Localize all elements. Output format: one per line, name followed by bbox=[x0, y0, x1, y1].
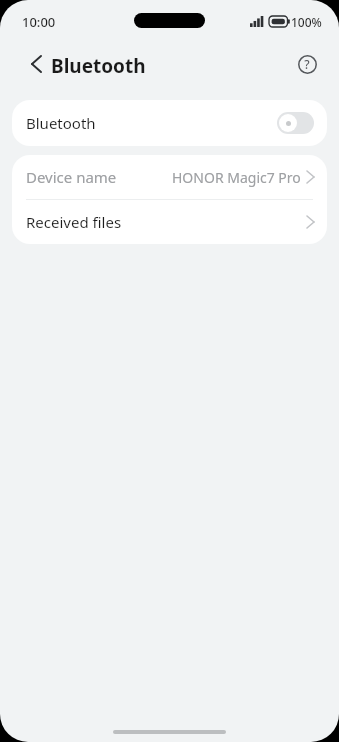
button[interactable]: Back bbox=[20, 48, 52, 80]
button[interactable]: Device name bbox=[12, 155, 327, 199]
button[interactable]: Bluetooth bbox=[12, 100, 327, 146]
staticText: 100% bbox=[291, 14, 322, 30]
staticText: Device name bbox=[26, 167, 117, 187]
staticText: Received files bbox=[26, 212, 122, 232]
staticText: ? bbox=[304, 56, 310, 72]
staticText: 10:00 bbox=[22, 13, 56, 31]
staticText: Bluetooth bbox=[26, 113, 96, 133]
button[interactable]: Bluetooth toggle bbox=[277, 112, 314, 134]
staticText: HONOR Magic7 Pro bbox=[172, 168, 301, 187]
button[interactable]: Received files bbox=[12, 200, 327, 244]
button[interactable]: Help bbox=[291, 48, 323, 80]
staticText: Bluetooth bbox=[51, 53, 146, 79]
